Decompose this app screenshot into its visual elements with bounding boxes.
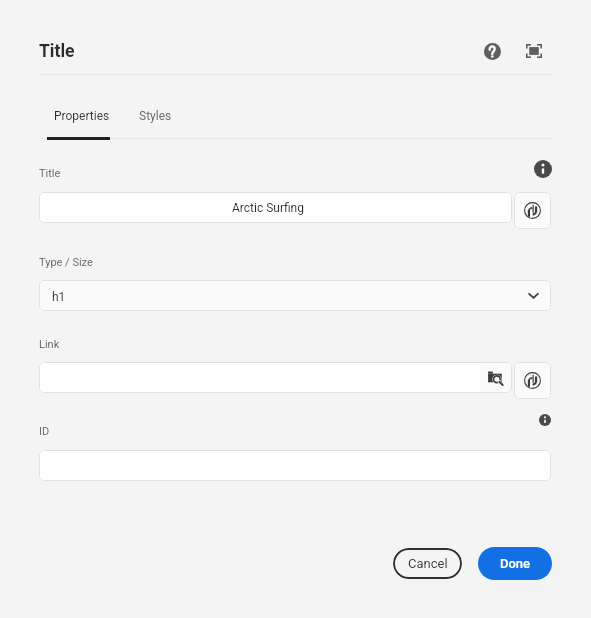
button[interactable]: Properties bbox=[47, 96, 110, 139]
staticText: Link bbox=[39, 338, 60, 351]
button[interactable]: Insert styling bbox=[514, 192, 551, 229]
staticText: Type / Size bbox=[39, 256, 93, 269]
button[interactable]: Fullscreen bbox=[520, 37, 548, 65]
staticText: Done bbox=[500, 556, 531, 571]
button[interactable]: Info about ID bbox=[539, 414, 551, 426]
button[interactable]: Link bbox=[39, 362, 480, 393]
button[interactable]: Arctic Surfing bbox=[39, 192, 512, 223]
staticText: Title bbox=[39, 167, 61, 180]
button[interactable]: Info about title bbox=[534, 160, 552, 178]
button[interactable]: Help bbox=[478, 37, 506, 65]
staticText: Properties bbox=[54, 109, 110, 123]
button[interactable]: Insert styling bbox=[514, 362, 551, 399]
staticText: Styles bbox=[139, 109, 172, 123]
button[interactable]: Cancel bbox=[393, 548, 462, 579]
staticText: Title bbox=[39, 41, 75, 62]
button[interactable]: ID bbox=[39, 450, 551, 481]
staticText: ID bbox=[39, 425, 50, 438]
button[interactable]: Styles bbox=[127, 96, 184, 139]
staticText: Cancel bbox=[408, 556, 448, 571]
button[interactable]: Done bbox=[478, 547, 552, 580]
staticText: h1 bbox=[52, 290, 66, 304]
staticText: Arctic Surfing bbox=[232, 201, 304, 215]
button[interactable]: Browse files bbox=[480, 362, 512, 393]
button[interactable]: Type / Size: h1 bbox=[39, 280, 551, 311]
